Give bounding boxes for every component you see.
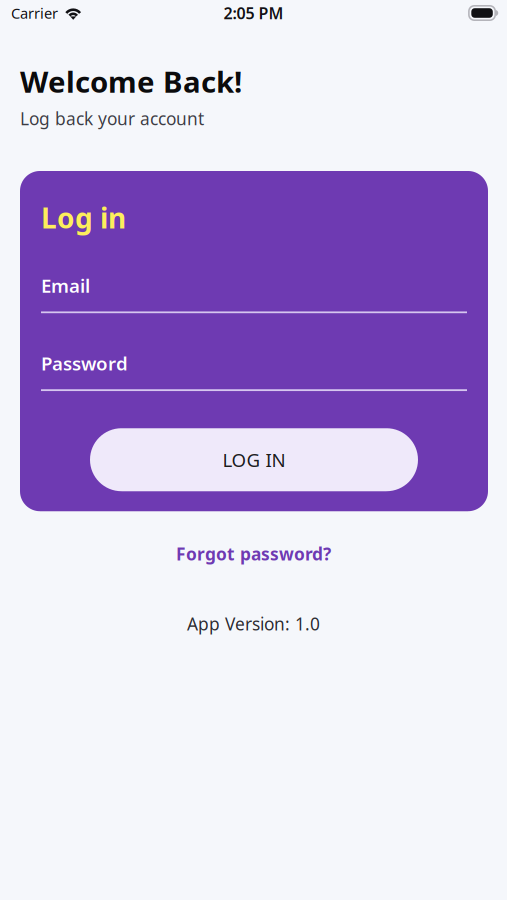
staticText: Forgot password? bbox=[176, 542, 331, 565]
button[interactable]: Password bbox=[41, 351, 467, 391]
button[interactable]: LOG IN bbox=[90, 428, 418, 491]
staticText: Password bbox=[41, 351, 128, 376]
staticText: LOG IN bbox=[222, 447, 285, 472]
staticText: App Version: 1.0 bbox=[187, 612, 320, 635]
button[interactable]: Email bbox=[41, 273, 467, 313]
staticText: Carrier bbox=[11, 3, 58, 23]
staticText: 2:05 PM bbox=[223, 2, 283, 24]
button[interactable]: Forgot password? bbox=[0, 511, 507, 573]
staticText: Log in bbox=[41, 199, 126, 236]
staticText: Welcome Back! bbox=[20, 62, 242, 101]
staticText: Email bbox=[41, 273, 90, 298]
staticText: Log back your account bbox=[20, 107, 204, 130]
